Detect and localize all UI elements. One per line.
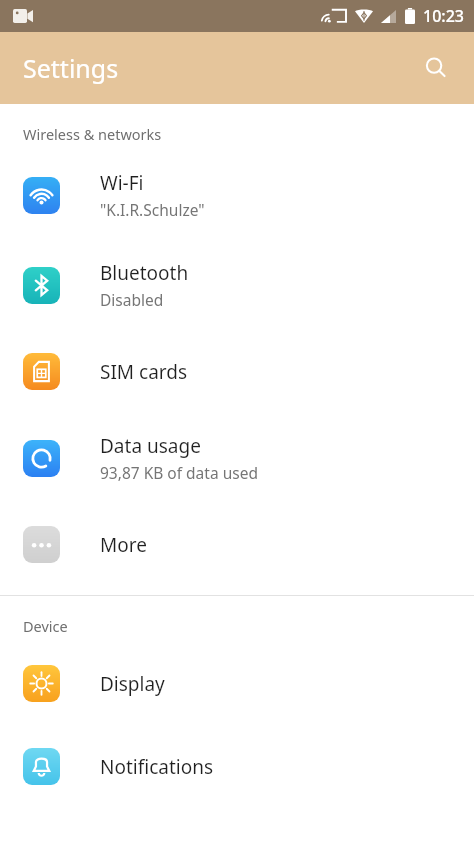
staticText: Wi-Fi xyxy=(100,170,144,196)
staticText: 10:23 xyxy=(423,5,464,27)
staticText: Display xyxy=(100,671,165,697)
button[interactable]: Notifications xyxy=(0,725,474,808)
button[interactable]: SIM cards xyxy=(0,330,474,413)
staticText: Disabled xyxy=(100,289,164,310)
staticText: Bluetooth xyxy=(100,260,189,286)
staticText: 93,87 KB of data used xyxy=(100,462,258,483)
staticText: Wireless & networks xyxy=(23,124,162,144)
staticText: Notifications xyxy=(100,754,214,780)
staticText: SIM cards xyxy=(100,359,188,385)
staticText: Data usage xyxy=(100,433,201,459)
staticText: Device xyxy=(23,616,68,636)
staticText: Settings xyxy=(23,51,119,85)
button[interactable]: Search xyxy=(412,44,460,92)
button[interactable]: Wi-Fi xyxy=(0,150,474,240)
staticText: "K.I.R.Schulze" xyxy=(100,199,205,220)
button[interactable]: Bluetooth xyxy=(0,240,474,330)
button[interactable]: Display xyxy=(0,642,474,725)
button[interactable]: Data usage xyxy=(0,413,474,503)
button[interactable]: More xyxy=(0,503,474,586)
staticText: More xyxy=(100,532,147,558)
